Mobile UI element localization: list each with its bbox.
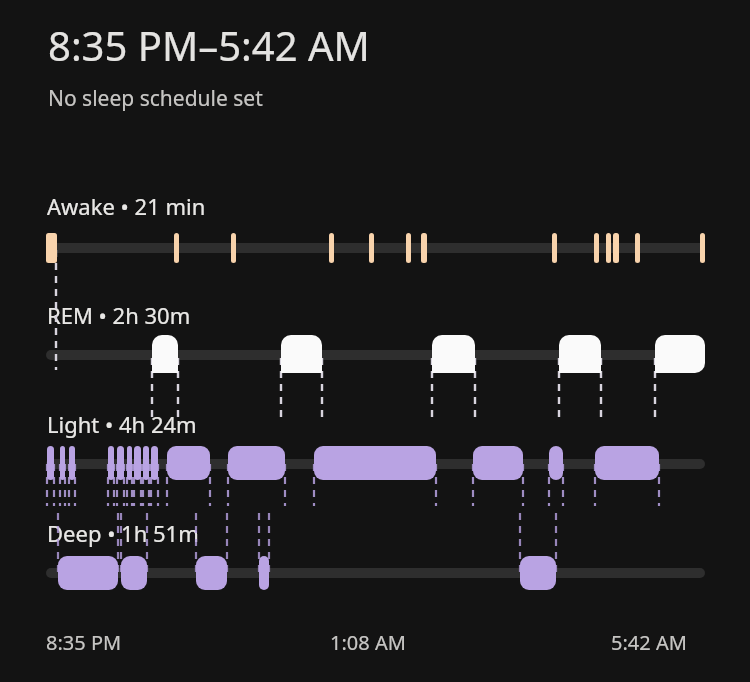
button[interactable]: Light • 4h 24m — [47, 409, 197, 439]
staticText: 5:42 AM — [611, 629, 687, 656]
staticText: Awake • 21 min — [47, 191, 206, 221]
staticText: 8:35 PM — [46, 629, 122, 656]
other: Sleep stages hypnogram — [0, 0, 750, 682]
button[interactable]: REM • 2h 30m — [47, 300, 191, 330]
staticText: 1:08 AM — [330, 629, 406, 656]
button[interactable]: 8:35 PM–5:42 AM — [0, 0, 750, 682]
staticText: No sleep schedule set — [48, 84, 263, 113]
staticText: 8:35 PM–5:42 AM — [48, 18, 370, 72]
staticText: REM • 2h 30m — [47, 300, 191, 330]
staticText: Light • 4h 24m — [47, 409, 197, 439]
staticText: Deep • 1h 51m — [47, 518, 199, 548]
button[interactable]: Deep • 1h 51m — [47, 518, 199, 548]
button[interactable]: Awake • 21 min — [47, 191, 206, 221]
